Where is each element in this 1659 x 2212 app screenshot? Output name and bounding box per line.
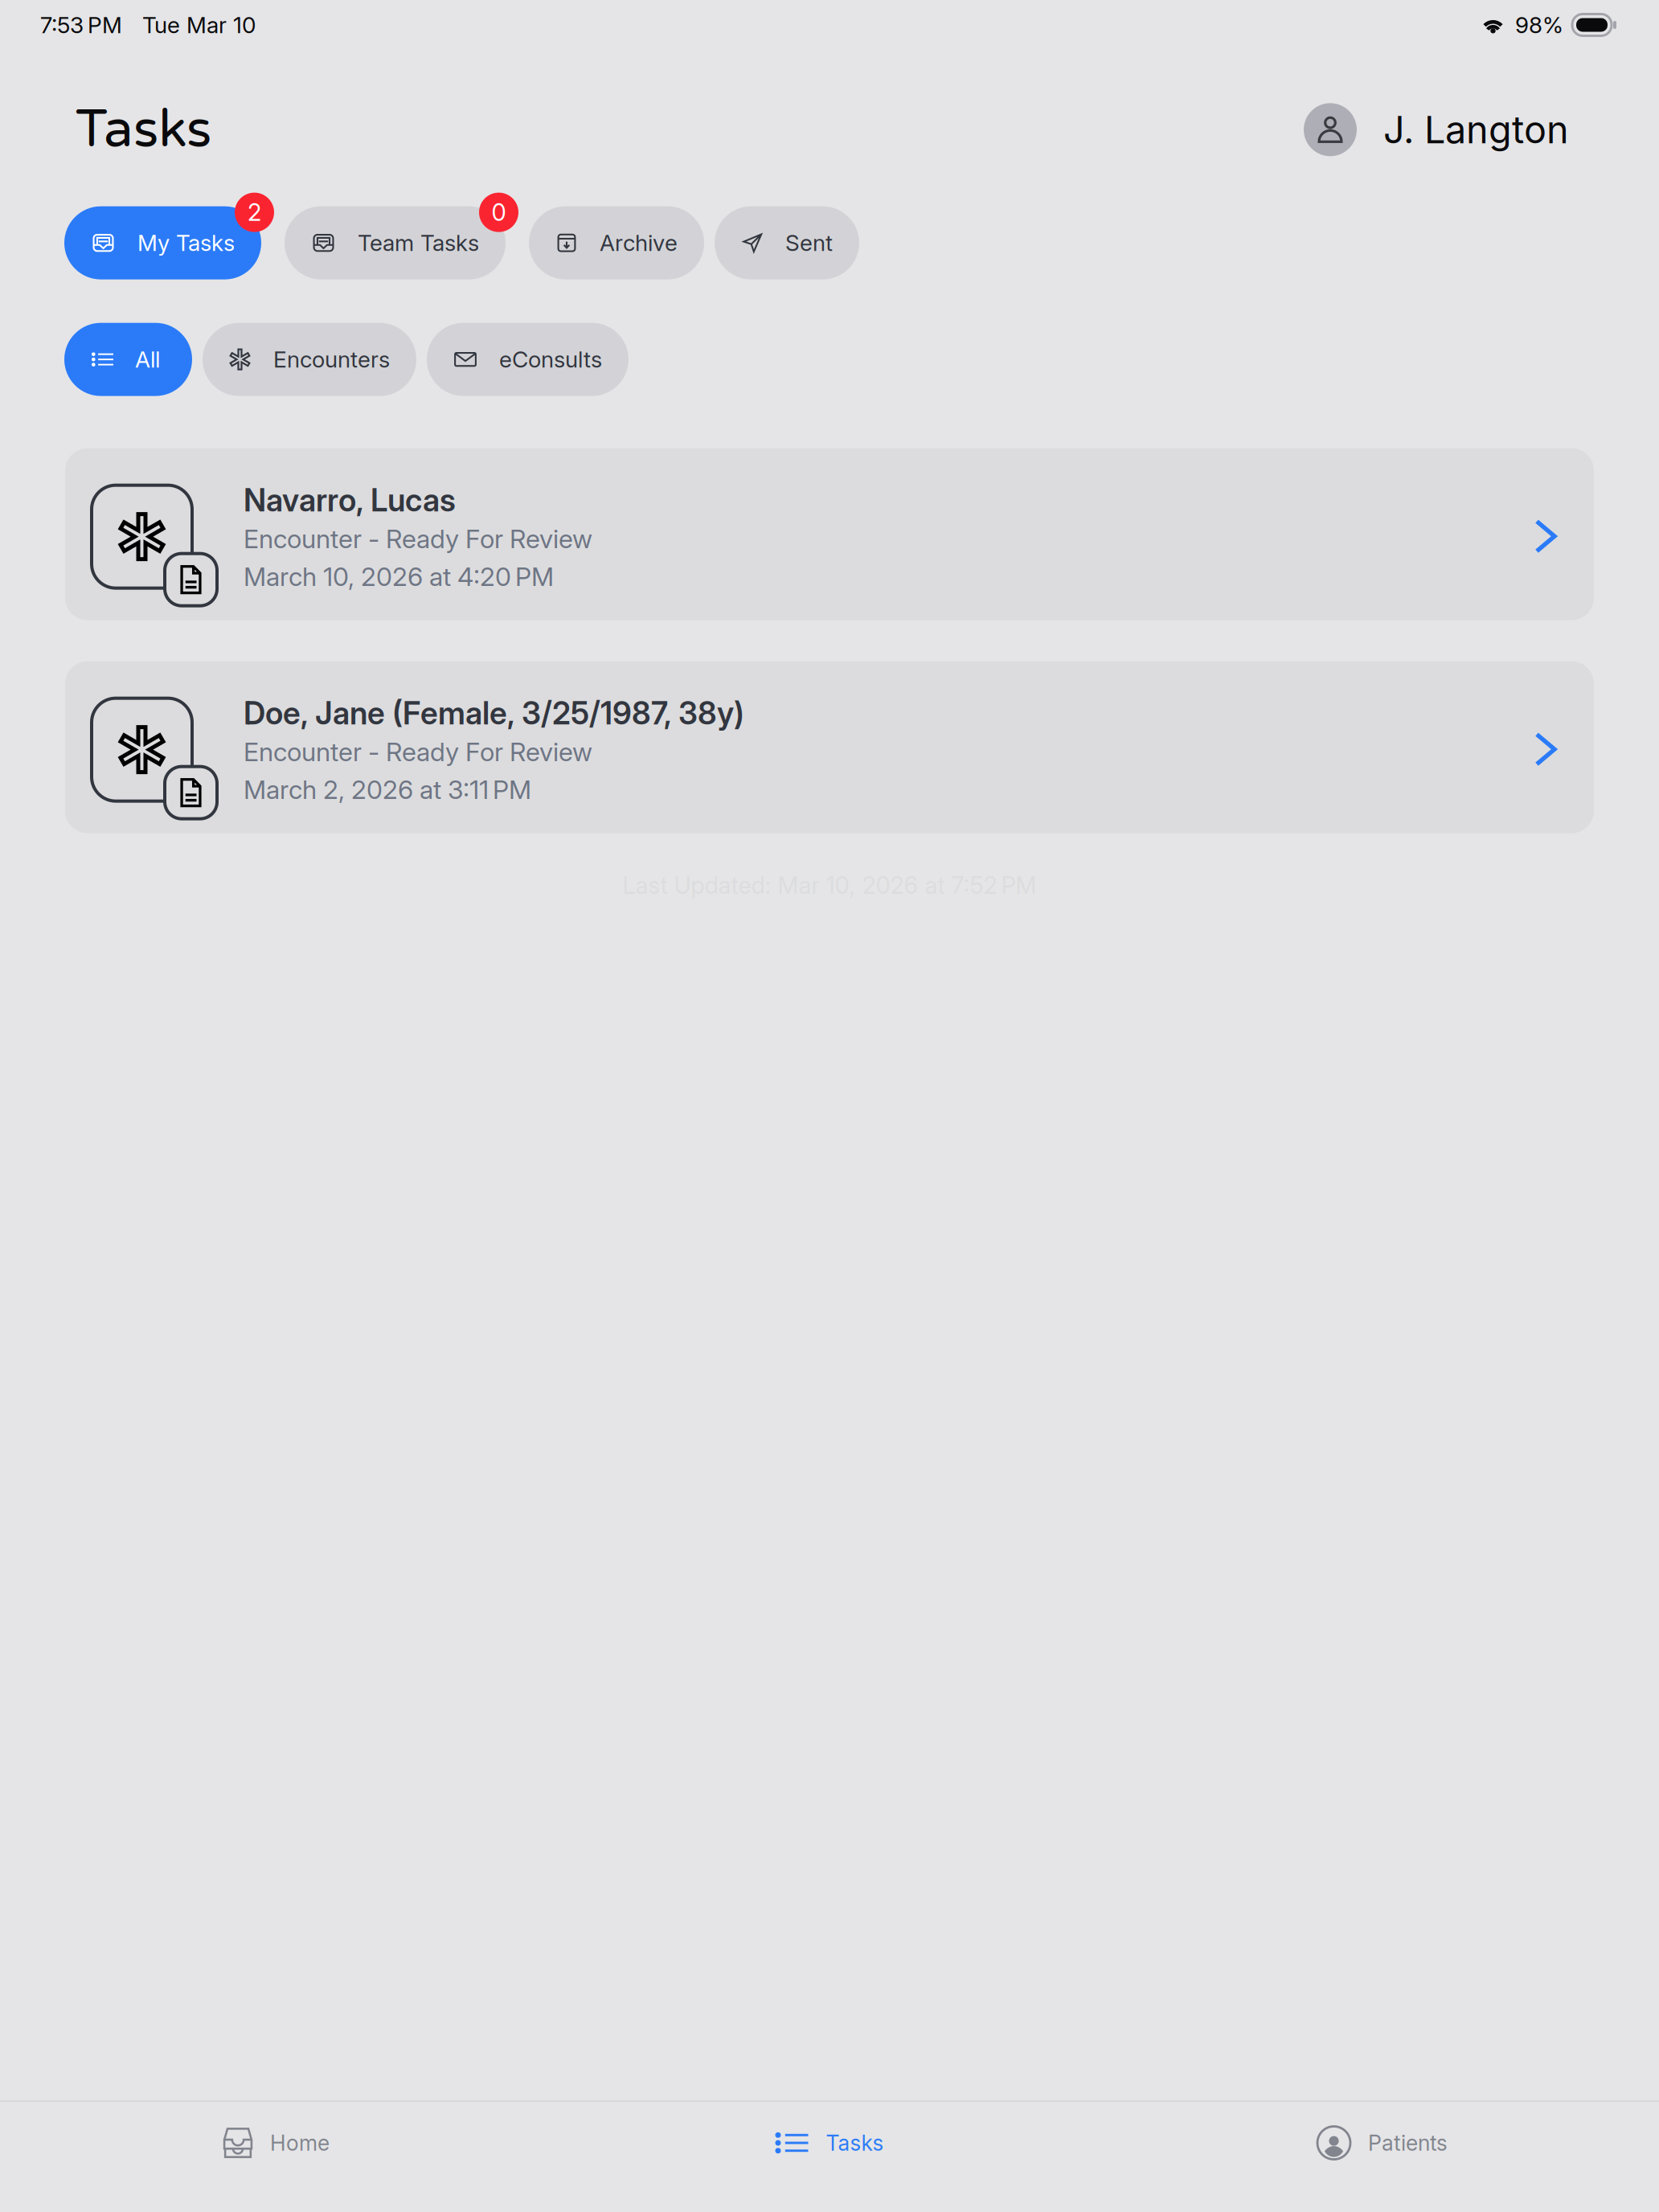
staticText: Home	[270, 2130, 330, 2156]
staticText: Encounter - Ready For Review	[244, 523, 592, 554]
staticText: Tasks	[76, 98, 211, 161]
staticText: March 2, 2026 at 3:11 PM	[244, 774, 531, 805]
button[interactable]: Tasks	[553, 2102, 1106, 2184]
button[interactable]: Home	[0, 2102, 553, 2184]
button[interactable]: Team Tasks	[285, 193, 518, 279]
button[interactable]: Patients	[1106, 2102, 1659, 2184]
button[interactable]: Navarro, Lucas	[65, 448, 1594, 620]
button[interactable]: My Tasks	[64, 193, 274, 279]
button[interactable]: Archive	[529, 206, 704, 279]
staticText: Team Tasks	[358, 229, 479, 256]
staticText: Tue Mar 10	[142, 11, 256, 39]
staticText: All	[135, 346, 160, 373]
staticText: Sent	[785, 229, 833, 256]
staticText: My Tasks	[137, 229, 235, 256]
staticText: Navarro, Lucas	[244, 481, 456, 519]
staticText: Encounters	[273, 346, 390, 373]
button[interactable]: All	[64, 323, 192, 396]
button[interactable]: Doe, Jane (Female, 3/25/1987, 38y)	[65, 661, 1594, 833]
staticText: Tasks	[826, 2130, 884, 2156]
button[interactable]: J. Langton	[1304, 103, 1569, 156]
staticText: March 10, 2026 at 4:20 PM	[244, 561, 554, 592]
staticText: J. Langton	[1383, 107, 1569, 152]
button[interactable]: Encounters	[203, 323, 416, 396]
staticText: 0	[492, 198, 506, 227]
staticText: Archive	[600, 229, 678, 256]
staticText: Last Updated: Mar 10, 2026 at 7:52 PM	[623, 871, 1036, 900]
staticText: Doe, Jane (Female, 3/25/1987, 38y)	[244, 694, 744, 732]
staticText: Patients	[1368, 2130, 1448, 2156]
staticText: 2	[248, 198, 261, 227]
button[interactable]: Sent	[715, 206, 859, 279]
staticText: 98%	[1515, 11, 1563, 39]
button[interactable]: eConsults	[427, 323, 629, 396]
staticText: 7:53 PM	[40, 11, 122, 39]
staticText: Encounter - Ready For Review	[244, 736, 592, 767]
staticText: eConsults	[499, 346, 602, 373]
